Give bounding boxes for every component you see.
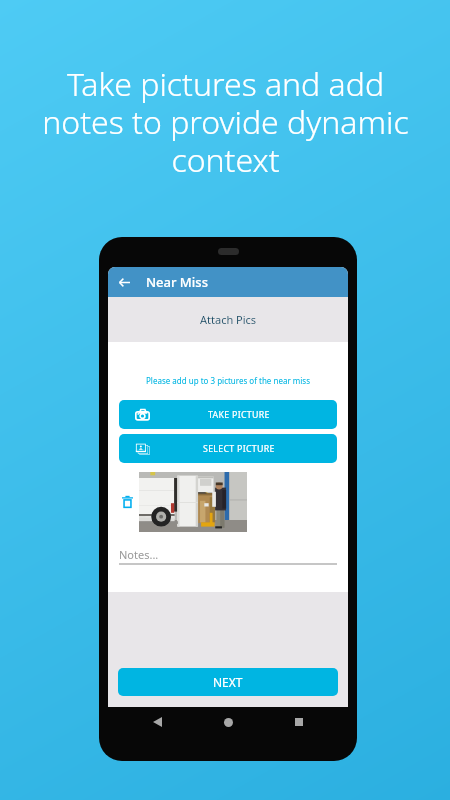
button[interactable]: Navigate back <box>108 267 141 297</box>
staticText: TAKE PICTURE <box>208 409 270 421</box>
button[interactable]: TAKE PICTURE <box>119 400 337 429</box>
button[interactable]: Delete picture <box>108 472 139 532</box>
staticText: Please add up to 3 pictures of the near … <box>146 375 310 386</box>
button[interactable]: Back <box>144 709 170 735</box>
staticText: Take pictures and add notes to provide d… <box>42 62 409 181</box>
button[interactable]: SELECT PICTURE <box>119 434 337 463</box>
staticText: Notes... <box>119 547 159 562</box>
staticText: Attach Pics <box>200 312 257 327</box>
staticText: SELECT PICTURE <box>203 443 275 455</box>
button[interactable]: Home <box>215 709 241 735</box>
button[interactable]: NEXT <box>118 668 338 696</box>
staticText: Near Miss <box>146 273 208 291</box>
staticText: NEXT <box>213 674 243 690</box>
button[interactable]: Recent apps <box>286 709 312 735</box>
